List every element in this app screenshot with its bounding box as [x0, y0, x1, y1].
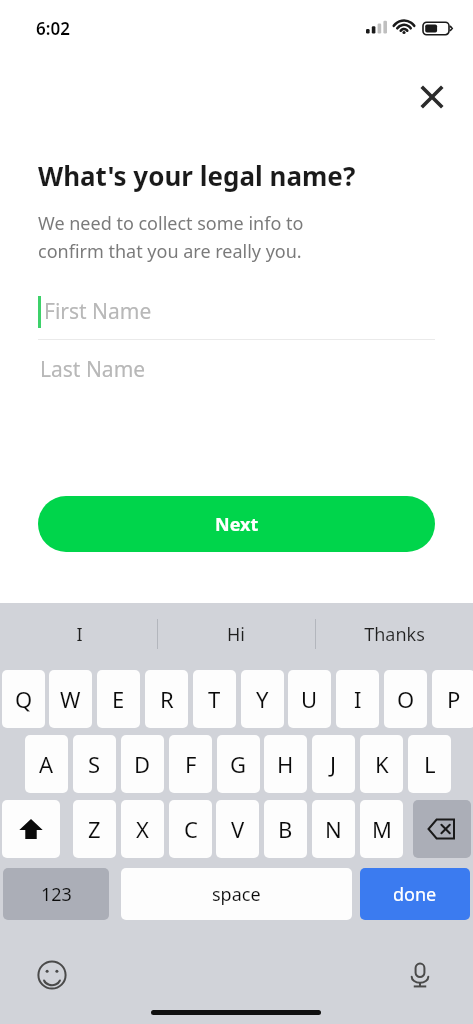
staticText: Hi — [227, 622, 245, 647]
button[interactable]: P — [432, 670, 473, 728]
staticText: S — [88, 749, 101, 779]
staticText: Next — [215, 512, 259, 537]
button[interactable]: Dictation — [396, 951, 444, 999]
button[interactable]: Z — [73, 800, 116, 858]
button[interactable]: H — [264, 735, 307, 793]
button[interactable]: S — [73, 735, 116, 793]
button[interactable]: R — [145, 670, 188, 728]
button[interactable]: K — [360, 735, 403, 793]
staticText: R — [160, 684, 174, 714]
button[interactable]: done — [360, 868, 470, 920]
staticText: K — [375, 749, 389, 779]
button[interactable]: V — [216, 800, 259, 858]
button[interactable]: W — [49, 670, 92, 728]
staticText: Thanks — [364, 622, 425, 647]
staticText: T — [208, 684, 221, 714]
staticText: M — [372, 814, 392, 844]
staticText: A — [39, 749, 54, 779]
staticText: V — [231, 814, 245, 844]
button[interactable]: space — [121, 868, 352, 920]
staticText: Q — [15, 684, 33, 714]
button[interactable]: E — [97, 670, 140, 728]
staticText: U — [301, 684, 318, 714]
staticText: L — [424, 749, 436, 779]
staticText: I — [354, 684, 362, 714]
button[interactable]: U — [288, 670, 331, 728]
button[interactable]: Next — [38, 496, 435, 552]
button[interactable]: Close — [408, 73, 456, 121]
staticText: C — [184, 814, 198, 844]
staticText: O — [397, 684, 415, 714]
button[interactable]: A — [25, 735, 68, 793]
staticText: What's your legal name? — [38, 158, 356, 193]
button[interactable]: M — [360, 800, 403, 858]
button[interactable]: I — [336, 670, 379, 728]
button[interactable]: N — [312, 800, 355, 858]
staticText: E — [112, 684, 125, 714]
button[interactable]: 123 — [3, 868, 109, 920]
staticText: J — [330, 749, 337, 779]
staticText: Z — [88, 814, 101, 844]
staticText: F — [185, 749, 197, 779]
button[interactable]: B — [264, 800, 307, 858]
button[interactable]: Backspace — [413, 800, 471, 858]
staticText: W — [60, 684, 81, 714]
button[interactable]: Emoji keyboard — [28, 951, 76, 999]
staticText: 123 — [41, 882, 72, 907]
staticText: H — [277, 749, 294, 779]
staticText: I — [76, 622, 83, 647]
staticText: space — [212, 882, 261, 907]
staticText: B — [278, 814, 293, 844]
staticText: Last Name — [40, 355, 146, 384]
button[interactable]: O — [384, 670, 427, 728]
button[interactable]: L — [408, 735, 451, 793]
staticText: G — [230, 749, 247, 779]
button[interactable]: I — [7, 603, 151, 665]
staticText: We need to collect some info to confirm … — [38, 211, 304, 263]
button[interactable]: Shift — [2, 800, 60, 858]
button[interactable]: J — [312, 735, 355, 793]
staticText: X — [136, 814, 149, 844]
button[interactable]: C — [169, 800, 212, 858]
button[interactable]: Y — [241, 670, 284, 728]
button[interactable]: X — [121, 800, 164, 858]
button[interactable]: T — [193, 670, 236, 728]
button[interactable]: Last Name — [38, 340, 435, 398]
button[interactable]: F — [169, 735, 212, 793]
button[interactable]: G — [217, 735, 260, 793]
button[interactable]: Thanks — [322, 603, 466, 665]
staticText: Y — [256, 684, 269, 714]
staticText: 6:02 — [36, 17, 70, 40]
button[interactable]: First Name — [38, 283, 435, 339]
staticText: First Name — [44, 297, 152, 326]
button[interactable]: Hi — [164, 603, 308, 665]
staticText: N — [325, 814, 342, 844]
staticText: done — [393, 882, 437, 907]
staticText: P — [447, 684, 461, 714]
button[interactable]: D — [121, 735, 164, 793]
staticText: D — [134, 749, 151, 779]
button[interactable]: Q — [2, 670, 45, 728]
